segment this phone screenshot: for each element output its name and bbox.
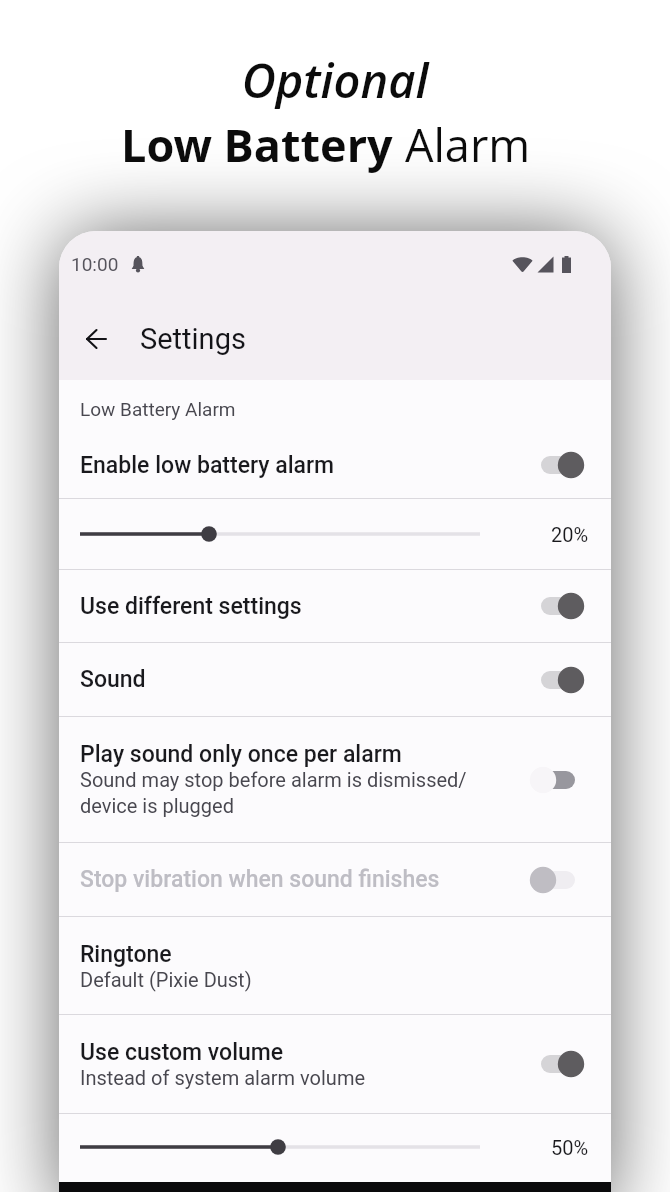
button[interactable]: Ringtone xyxy=(59,917,611,1014)
staticText: 50% xyxy=(551,1136,589,1159)
staticText: Instead of system alarm volume xyxy=(80,1066,366,1089)
button[interactable]: Back xyxy=(72,315,120,363)
staticText: Low Battery Alarm xyxy=(80,398,236,420)
staticText: Optional xyxy=(0,48,670,112)
staticText: Ringtone xyxy=(80,941,172,968)
button[interactable]: Use custom volume xyxy=(59,1015,611,1113)
button[interactable]: Use different settings xyxy=(59,570,611,642)
staticText: 10:00 xyxy=(71,253,119,275)
button[interactable]: Stop vibration when sound finishes xyxy=(59,843,611,916)
button[interactable]: Enable low battery alarm xyxy=(59,432,611,498)
button[interactable]: Play sound only once per alarm xyxy=(59,717,611,842)
button[interactable]: Sound xyxy=(59,643,611,716)
button[interactable] xyxy=(80,521,480,547)
button[interactable] xyxy=(80,1134,480,1160)
staticText: Settings xyxy=(140,322,246,356)
staticText: Stop vibration when sound finishes xyxy=(80,866,440,893)
staticText: Alarm xyxy=(405,114,531,175)
staticText: Sound xyxy=(80,666,146,693)
staticText: 20% xyxy=(551,523,589,546)
staticText: Use custom volume xyxy=(80,1039,284,1066)
staticText: Play sound only once per alarm xyxy=(80,741,402,768)
staticText: Low Battery xyxy=(121,114,405,175)
staticText: Enable low battery alarm xyxy=(80,452,530,479)
staticText: Default (Pixie Dust) xyxy=(80,968,252,991)
staticText: Use different settings xyxy=(80,593,302,620)
staticText: Sound may stop before alarm is dismissed… xyxy=(80,768,467,818)
